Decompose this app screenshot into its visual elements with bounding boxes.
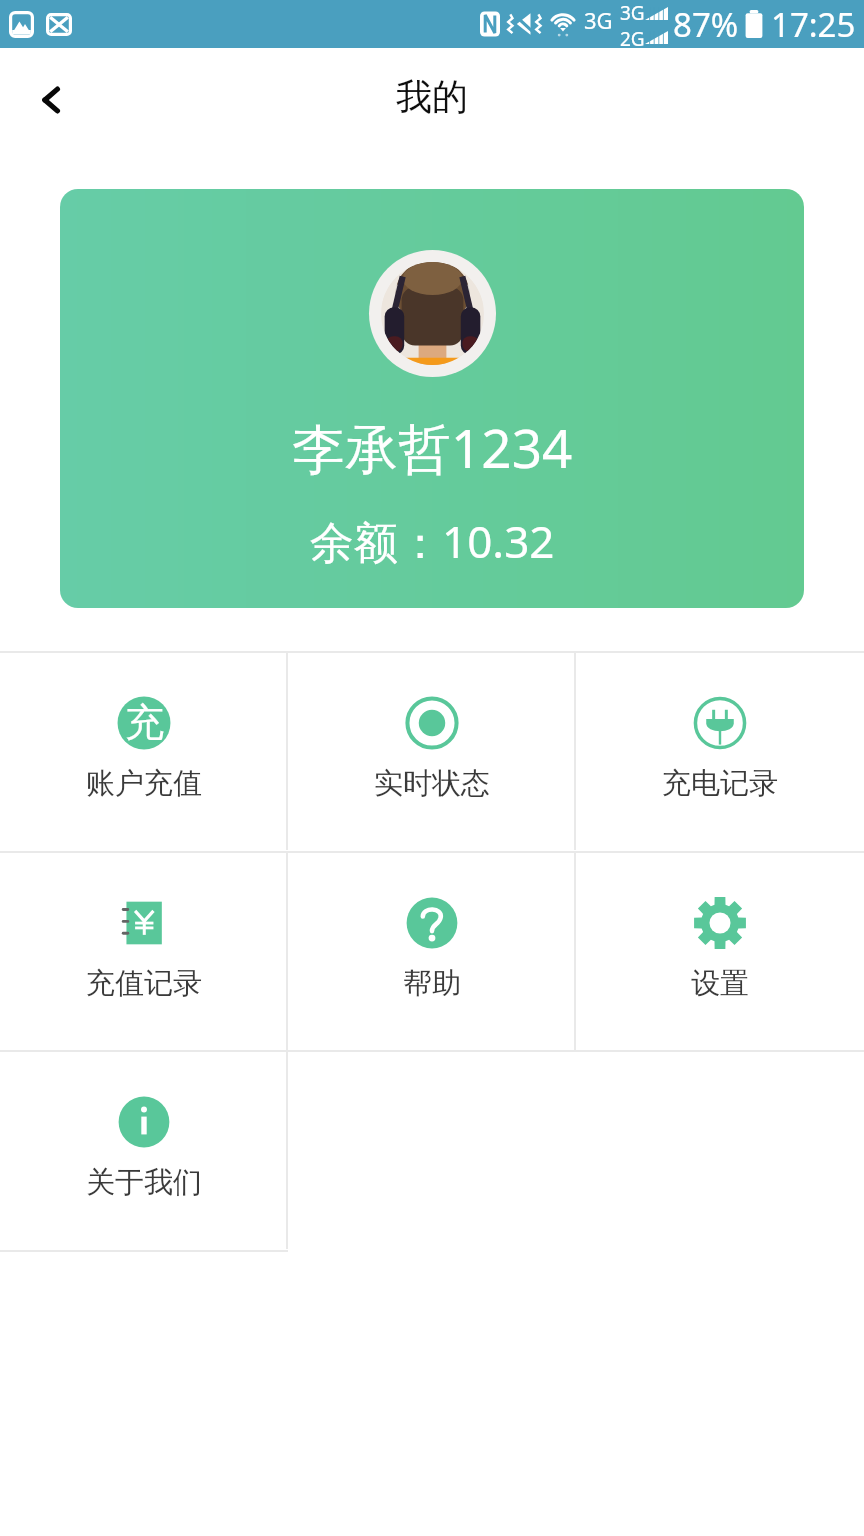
button[interactable]: 设置 xyxy=(576,851,864,1050)
staticText: 充值记录 xyxy=(86,965,202,1002)
other: Screenshot saved xyxy=(9,11,34,38)
button[interactable]: 充电记录 xyxy=(576,651,864,850)
staticText: 我的 xyxy=(396,74,468,119)
staticText: 李承哲1234 xyxy=(292,411,573,483)
button[interactable]: 充值记录 xyxy=(0,851,288,1050)
other: Sound muted, vibrate xyxy=(506,9,542,39)
button[interactable]: 实时状态 xyxy=(288,651,576,850)
staticText: 充 xyxy=(125,698,164,747)
staticText: 余额：10.32 xyxy=(310,511,555,571)
staticText: 3G xyxy=(620,0,645,26)
other: New message xyxy=(46,13,72,36)
staticText: 充电记录 xyxy=(662,765,778,802)
staticText: 帮助 xyxy=(403,965,461,1002)
staticText: 17:25 xyxy=(771,2,856,47)
staticText: 3G xyxy=(584,5,613,35)
staticText: 设置 xyxy=(691,965,749,1002)
staticText: 实时状态 xyxy=(374,765,490,802)
other: Wi-Fi xyxy=(547,9,579,39)
button[interactable]: 充 xyxy=(0,651,288,850)
other: Battery 87 percent xyxy=(744,10,764,38)
button[interactable]: Back xyxy=(0,48,96,144)
other: NFC on xyxy=(478,9,502,39)
staticText: 2G xyxy=(620,26,645,48)
button[interactable]: 李承哲1234 xyxy=(60,189,804,608)
button[interactable]: 关于我们 xyxy=(0,1050,288,1249)
button[interactable]: 帮助 xyxy=(288,851,576,1050)
staticText: 账户充值 xyxy=(86,765,202,802)
staticText: 87% xyxy=(673,2,739,47)
staticText: 关于我们 xyxy=(86,1164,202,1201)
